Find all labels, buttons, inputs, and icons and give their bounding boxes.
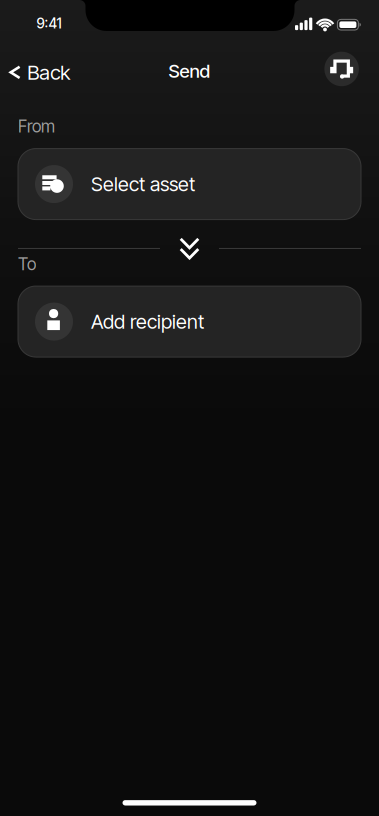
staticText: Back xyxy=(27,60,70,85)
staticText: Send xyxy=(168,60,210,82)
staticText: Add recipient xyxy=(91,310,204,334)
button[interactable]: Add recipient xyxy=(18,286,361,357)
staticText: To xyxy=(18,254,36,274)
button[interactable]: Support xyxy=(324,52,359,86)
button[interactable]: Back xyxy=(0,60,76,85)
staticText: From xyxy=(18,116,55,137)
staticText: Select asset xyxy=(91,172,195,196)
staticText: 9:41 xyxy=(36,15,61,32)
button[interactable]: Select asset xyxy=(18,149,361,220)
button[interactable]: Swap xyxy=(179,237,200,260)
